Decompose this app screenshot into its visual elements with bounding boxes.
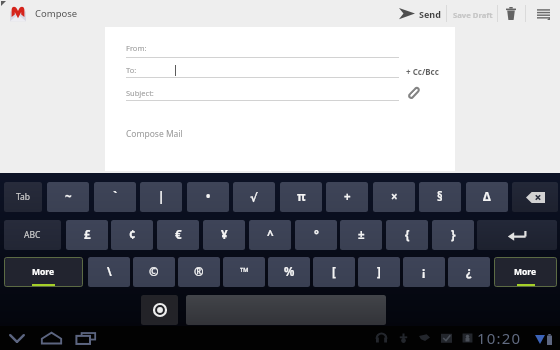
staticText: ¿	[466, 264, 472, 280]
staticText: £	[84, 227, 91, 243]
staticText: More	[32, 266, 55, 278]
staticText: ]	[377, 264, 381, 280]
button[interactable]: {	[386, 220, 428, 250]
button[interactable]: From:	[126, 43, 399, 59]
button[interactable]: Space	[186, 295, 386, 325]
button[interactable]: Subject:	[126, 88, 399, 104]
button[interactable]: £	[66, 220, 108, 250]
staticText: |	[158, 189, 165, 205]
staticText: •	[206, 189, 211, 205]
staticText: %	[284, 264, 295, 280]
button[interactable]: ©	[133, 257, 175, 287]
staticText: Send	[419, 8, 441, 20]
other: Enter	[507, 229, 527, 242]
staticText: ^	[267, 227, 274, 243]
button[interactable]: Input method settings	[141, 295, 178, 325]
staticText: Tab	[16, 191, 31, 203]
button[interactable]: `	[94, 182, 136, 212]
staticText: `	[113, 189, 118, 205]
staticText: ABC	[24, 229, 41, 241]
staticText: π	[297, 189, 306, 205]
button[interactable]: Backspace	[512, 182, 558, 212]
staticText: €	[175, 227, 182, 243]
staticText: \	[107, 264, 112, 280]
button[interactable]: ^	[249, 220, 291, 250]
staticText: Subject:	[126, 88, 154, 98]
button[interactable]: More options	[531, 0, 555, 27]
staticText: ±	[358, 227, 365, 243]
button[interactable]: §	[419, 182, 461, 212]
button[interactable]: ABC	[4, 220, 61, 250]
button[interactable]: π	[280, 182, 322, 212]
button[interactable]: Hide keyboard	[5, 326, 29, 350]
button[interactable]: \	[88, 257, 130, 287]
staticText: To:	[126, 65, 137, 75]
button[interactable]: [	[313, 257, 355, 287]
button[interactable]: %	[268, 257, 310, 287]
button[interactable]: Compose Mail	[126, 128, 183, 140]
button[interactable]: Discard	[500, 0, 522, 27]
button[interactable]: €	[157, 220, 199, 250]
button[interactable]: Tab	[4, 182, 42, 212]
staticText: }	[451, 227, 456, 243]
button[interactable]: Navigate up	[3, 0, 84, 27]
button[interactable]: Δ	[466, 182, 508, 212]
button[interactable]: ¥	[203, 220, 245, 250]
button[interactable]: ™	[223, 257, 265, 287]
button[interactable]: ¢	[111, 220, 153, 250]
button[interactable]: Home	[39, 326, 63, 350]
staticText: ~	[65, 189, 72, 205]
button[interactable]: Attach file	[407, 86, 420, 99]
staticText: Δ	[483, 189, 491, 205]
staticText: From:	[126, 43, 147, 53]
staticText: ©	[149, 264, 159, 280]
button[interactable]: ~	[47, 182, 89, 212]
staticText: +	[344, 189, 351, 205]
button[interactable]: Save Draft	[450, 0, 494, 27]
staticText: ¢	[129, 227, 136, 243]
staticText: {	[405, 227, 410, 243]
button[interactable]: ¿	[448, 257, 490, 287]
staticText: §	[437, 189, 443, 205]
button[interactable]: °	[295, 220, 337, 250]
button[interactable]: Recent apps	[74, 326, 98, 350]
button[interactable]: ]	[358, 257, 400, 287]
staticText: √	[250, 191, 258, 204]
staticText: More	[514, 266, 537, 278]
button[interactable]: To:	[126, 65, 399, 81]
button[interactable]: +	[326, 182, 368, 212]
staticText: °	[314, 227, 319, 243]
button[interactable]: Enter	[477, 220, 557, 250]
staticText: [	[332, 264, 336, 280]
button[interactable]: ¡	[403, 257, 445, 287]
button[interactable]: }	[432, 220, 474, 250]
button[interactable]: ×	[373, 182, 415, 212]
button[interactable]: + Cc/Bcc	[406, 66, 439, 77]
button[interactable]: More	[494, 257, 557, 287]
button[interactable]: √	[233, 182, 275, 212]
staticText: ®	[194, 264, 204, 280]
button[interactable]: •	[187, 182, 229, 212]
button[interactable]: More	[4, 257, 83, 287]
button[interactable]: ®	[178, 257, 220, 287]
staticText: ™	[240, 264, 249, 280]
button[interactable]: |	[140, 182, 182, 212]
other: Backspace	[526, 192, 545, 203]
staticText: ¡	[422, 264, 426, 280]
staticText: Save Draft	[453, 10, 493, 20]
staticText: ¥	[221, 227, 228, 243]
button[interactable]: ±	[340, 220, 382, 250]
button[interactable]: Send	[399, 0, 445, 27]
staticText: Compose	[35, 7, 78, 20]
staticText: 10:20	[477, 328, 522, 348]
staticText: ×	[391, 189, 398, 205]
